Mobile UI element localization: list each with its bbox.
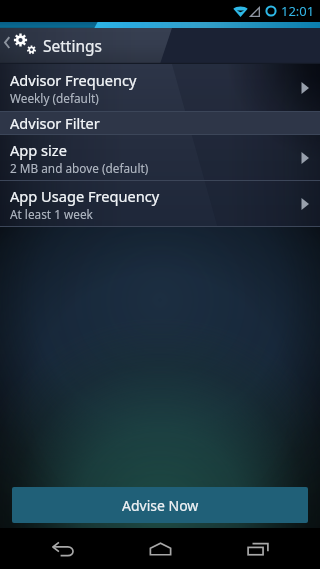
button[interactable]: App size xyxy=(0,135,320,180)
staticText: App Usage Frequency xyxy=(10,186,160,206)
button[interactable]: Advisor Frequency xyxy=(0,64,320,111)
button[interactable]: Advise Now xyxy=(12,487,308,523)
button[interactable]: Back xyxy=(28,528,98,569)
staticText: Advisor Filter xyxy=(10,113,100,133)
staticText: 2 MB and above (default) xyxy=(10,160,149,176)
button[interactable]: Home xyxy=(125,528,195,569)
staticText: Advisor Frequency xyxy=(10,70,137,90)
button[interactable]: Navigate up xyxy=(0,28,38,64)
staticText: At least 1 week xyxy=(10,206,93,222)
button[interactable]: App Usage Frequency xyxy=(0,181,320,226)
staticText: Weekly (default) xyxy=(10,90,99,106)
button[interactable]: Recent apps xyxy=(223,528,293,569)
button[interactable]: Advisor Filter xyxy=(0,112,320,134)
staticText: Advise Now xyxy=(122,496,199,515)
staticText: 12:01 xyxy=(281,2,315,20)
staticText: App size xyxy=(10,140,67,160)
staticText: Settings xyxy=(43,35,102,56)
